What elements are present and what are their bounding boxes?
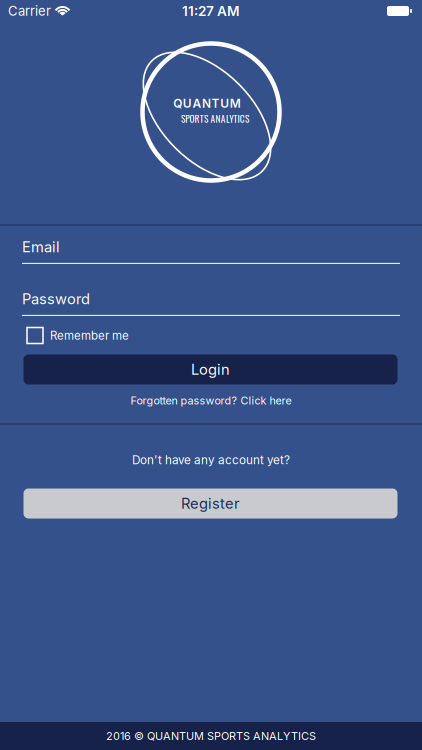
staticText: Email bbox=[22, 238, 60, 256]
button[interactable]: Password bbox=[22, 290, 400, 316]
staticText: Register bbox=[181, 495, 240, 512]
staticText: 11:27 AM bbox=[182, 3, 240, 19]
staticText: Remember me bbox=[50, 329, 129, 342]
staticText: Password bbox=[22, 290, 90, 308]
staticText: Don't have any account yet? bbox=[132, 453, 290, 467]
staticText: 2016 © QUANTUM SPORTS ANALYTICS bbox=[106, 729, 316, 743]
button[interactable]: Remember me bbox=[27, 327, 129, 343]
staticText: QUANTUM bbox=[173, 96, 241, 111]
staticText: Forgotten password? Click here bbox=[130, 394, 291, 407]
staticText: Carrier bbox=[8, 3, 51, 19]
button[interactable]: Login bbox=[23, 354, 397, 384]
staticText: SPORTS ANALYTICS bbox=[181, 112, 249, 125]
button[interactable]: Register bbox=[23, 488, 397, 518]
button[interactable]: Forgotten password? Click here bbox=[130, 394, 291, 407]
staticText: Login bbox=[191, 361, 230, 378]
button[interactable]: Email bbox=[22, 238, 400, 264]
